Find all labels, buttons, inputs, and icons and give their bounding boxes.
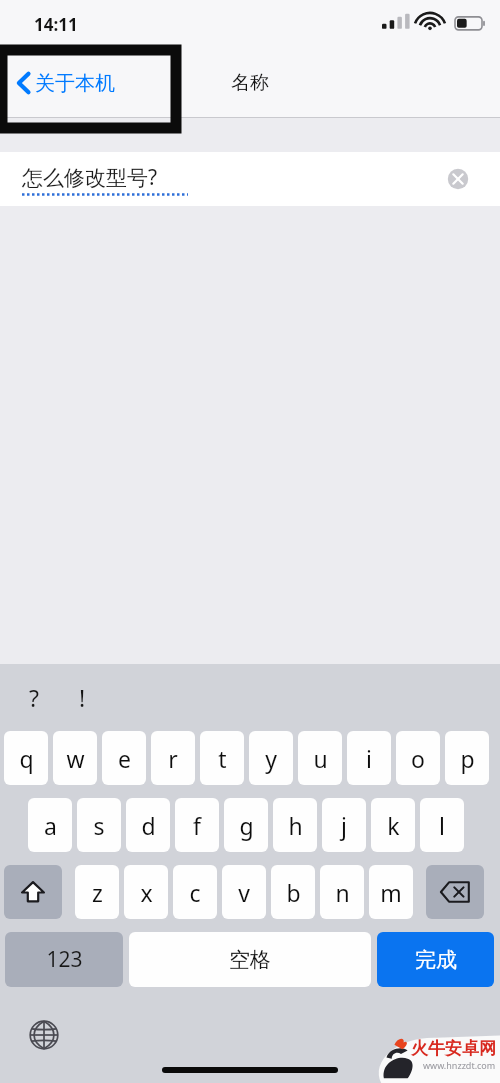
button[interactable]: e [102, 731, 146, 785]
button[interactable]: i [347, 731, 391, 785]
button[interactable]: 123 [5, 932, 123, 987]
staticText: r [168, 743, 178, 774]
staticText: 123 [46, 945, 83, 974]
staticText: a [44, 810, 57, 841]
button[interactable]: 完成 [377, 932, 494, 987]
button[interactable]: c [173, 865, 217, 919]
staticText: w [66, 743, 85, 774]
button[interactable]: u [298, 731, 342, 785]
staticText: l [439, 810, 445, 841]
staticText: s [93, 810, 105, 841]
button[interactable]: ! [58, 664, 106, 731]
button[interactable]: w [53, 731, 97, 785]
button[interactable]: a [28, 798, 72, 852]
staticText: z [92, 877, 103, 908]
staticText: www.hnzzdt.com [423, 1059, 496, 1071]
button[interactable]: f [175, 798, 219, 852]
button[interactable]: z [75, 865, 119, 919]
button[interactable]: p [445, 731, 489, 785]
staticText: g [239, 810, 254, 841]
button[interactable]: y [249, 731, 293, 785]
button[interactable]: t [200, 731, 244, 785]
button[interactable]: b [271, 865, 315, 919]
staticText: 14:11 [34, 13, 78, 36]
staticText: n [335, 877, 350, 908]
button[interactable]: o [396, 731, 440, 785]
button[interactable]: s [77, 798, 121, 852]
button[interactable]: n [320, 865, 364, 919]
button[interactable]: Backspace [426, 865, 484, 919]
staticText: h [288, 810, 303, 841]
staticText: m [380, 877, 402, 908]
button[interactable]: Clear text [446, 167, 470, 191]
staticText: 名称 [231, 71, 269, 95]
button[interactable]: Change keyboard language [24, 1015, 64, 1055]
staticText: q [19, 743, 34, 774]
button[interactable]: l [420, 798, 464, 852]
staticText: o [411, 743, 425, 774]
button[interactable]: ? [10, 664, 58, 731]
staticText: x [140, 877, 153, 908]
button[interactable]: h [273, 798, 317, 852]
staticText: y [265, 743, 277, 774]
staticText: t [218, 743, 227, 774]
button[interactable]: q [4, 731, 48, 785]
staticText: 怎么修改型号? [22, 163, 158, 192]
staticText: e [118, 743, 131, 774]
staticText: 空格 [229, 947, 271, 973]
button[interactable]: 怎么修改型号? [0, 152, 500, 206]
staticText: d [141, 810, 156, 841]
button[interactable]: 关于本机 [10, 62, 121, 104]
staticText: 火牛安卓网 [411, 1038, 496, 1059]
button[interactable]: d [126, 798, 170, 852]
staticText: ? [29, 682, 39, 713]
staticText: 完成 [415, 947, 457, 973]
staticText: c [189, 877, 201, 908]
staticText: f [193, 810, 201, 841]
button[interactable]: x [124, 865, 168, 919]
button[interactable]: g [224, 798, 268, 852]
staticText: i [366, 743, 372, 774]
button[interactable]: j [322, 798, 366, 852]
button[interactable]: k [371, 798, 415, 852]
button[interactable]: m [369, 865, 413, 919]
button[interactable]: 空格 [129, 932, 371, 987]
button[interactable]: Shift [4, 865, 62, 919]
staticText: v [238, 877, 250, 908]
staticText: u [313, 743, 328, 774]
staticText: k [387, 810, 400, 841]
staticText: 关于本机 [35, 71, 115, 96]
button[interactable]: r [151, 731, 195, 785]
staticText: j [341, 810, 347, 841]
staticText: b [286, 877, 301, 908]
staticText: p [460, 743, 475, 774]
button[interactable]: v [222, 865, 266, 919]
staticText: ! [79, 682, 86, 713]
